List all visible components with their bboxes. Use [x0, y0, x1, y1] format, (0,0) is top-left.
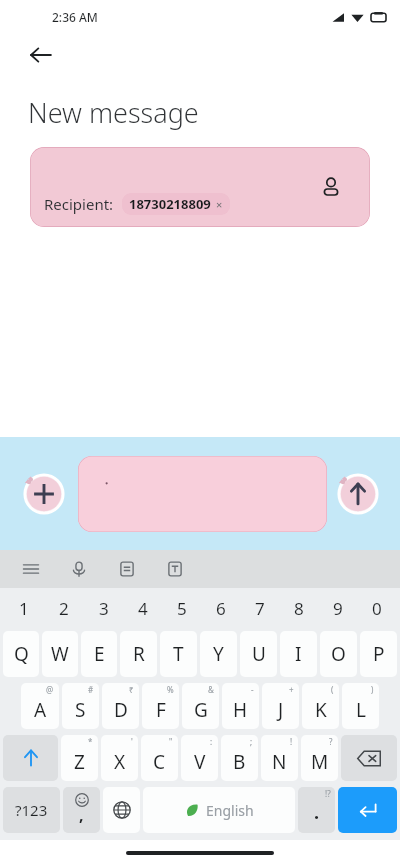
staticText: ?123 [15, 800, 48, 820]
staticText: 9 [333, 597, 343, 620]
staticText: X [114, 749, 126, 775]
button[interactable]: 7 [240, 588, 279, 628]
staticText: 0 [372, 597, 382, 620]
button[interactable]: ?123 [3, 787, 60, 833]
button[interactable]: Backspace [341, 735, 397, 781]
staticText: W [51, 641, 69, 667]
button[interactable]: : [181, 735, 218, 781]
staticText: K [315, 697, 327, 723]
button[interactable]: 0 [357, 588, 396, 628]
staticText: 2:36 AM [52, 9, 98, 25]
staticText: B [233, 749, 246, 775]
button[interactable]: @ [21, 683, 59, 729]
button[interactable]: Back [22, 36, 60, 74]
staticText: J [278, 697, 284, 723]
button[interactable]: 4 [123, 588, 162, 628]
button[interactable] [78, 456, 327, 532]
staticText: 2 [59, 597, 69, 620]
button[interactable]: 1 [4, 588, 44, 628]
staticText: L [356, 697, 366, 723]
button[interactable]: 3 [84, 588, 123, 628]
staticText: , [79, 804, 84, 826]
staticText: & [208, 684, 214, 695]
staticText: C [153, 749, 166, 775]
button[interactable]: Q [3, 631, 39, 677]
button[interactable]: P [360, 631, 397, 677]
button[interactable]: R [120, 631, 157, 677]
button[interactable]: Y [200, 631, 237, 677]
button[interactable]: + [262, 683, 299, 729]
button[interactable]: U [240, 631, 277, 677]
button[interactable]: Send [336, 472, 380, 516]
staticText: # [88, 684, 94, 695]
staticText: 3 [99, 597, 109, 620]
button[interactable]: Voice input [66, 556, 92, 582]
button[interactable]: E [81, 631, 117, 677]
staticText: O [331, 641, 346, 667]
button[interactable]: Clipboard [114, 556, 140, 582]
button[interactable]: W [42, 631, 78, 677]
staticText: ' [131, 736, 133, 747]
staticText: F [156, 697, 166, 723]
staticText: Recipient: [44, 194, 114, 214]
staticText: : [210, 736, 213, 747]
staticText: 7 [255, 597, 265, 620]
staticText: I [295, 641, 302, 667]
button[interactable]: 18730218809 [129, 195, 223, 213]
button[interactable]: 5 [162, 588, 201, 628]
staticText: E [94, 641, 105, 667]
staticText: 18730218809 [129, 195, 211, 213]
button[interactable]: Period [298, 787, 335, 833]
staticText: - [251, 684, 254, 695]
button[interactable]: O [320, 631, 357, 677]
button[interactable]: I [280, 631, 317, 677]
button[interactable]: Menu [18, 556, 44, 582]
staticText: G [194, 697, 208, 723]
staticText: N [272, 749, 287, 775]
staticText: T [173, 641, 184, 667]
button[interactable]: % [142, 683, 179, 729]
button[interactable]: Switch language [103, 787, 140, 833]
button[interactable]: ) [342, 683, 379, 729]
button[interactable]: 9 [318, 588, 357, 628]
button[interactable]: # [62, 683, 99, 729]
button[interactable]: 6 [201, 588, 240, 628]
staticText: * [88, 736, 93, 747]
button[interactable]: - [222, 683, 259, 729]
button[interactable]: ( [302, 683, 339, 729]
button[interactable]: Emoji and comma [63, 787, 100, 833]
button[interactable]: & [182, 683, 219, 729]
button[interactable]: Shift [3, 735, 58, 781]
staticText: 8 [294, 597, 304, 620]
button[interactable]: 2 [44, 588, 84, 628]
button[interactable]: Enter [338, 787, 397, 833]
button[interactable]: Add attachment [22, 472, 66, 516]
button[interactable]: " [141, 735, 178, 781]
button[interactable]: ₹ [102, 683, 139, 729]
staticText: V [194, 749, 206, 775]
staticText: P [373, 641, 385, 667]
button[interactable]: 8 [279, 588, 318, 628]
staticText: 5 [177, 597, 187, 620]
staticText: " [169, 736, 173, 747]
button[interactable]: ; [221, 735, 258, 781]
staticText: + [289, 684, 294, 695]
staticText: ? [329, 736, 333, 747]
button[interactable]: ' [101, 735, 138, 781]
button[interactable]: ! [261, 735, 298, 781]
staticText: ( [331, 684, 334, 695]
button[interactable]: * [61, 735, 98, 781]
staticText: ! [290, 736, 293, 747]
button[interactable]: Recipient: [30, 147, 370, 227]
staticText: % [167, 684, 174, 695]
button[interactable]: ? [301, 735, 338, 781]
button[interactable]: T [160, 631, 197, 677]
staticText: !? [325, 788, 331, 799]
button[interactable]: English [143, 787, 295, 833]
staticText: ) [371, 684, 374, 695]
staticText: D [114, 697, 128, 723]
button[interactable]: Text style [162, 556, 188, 582]
staticText: New message [28, 94, 199, 131]
staticText: 4 [138, 597, 148, 620]
button[interactable]: Choose contact [314, 170, 348, 204]
